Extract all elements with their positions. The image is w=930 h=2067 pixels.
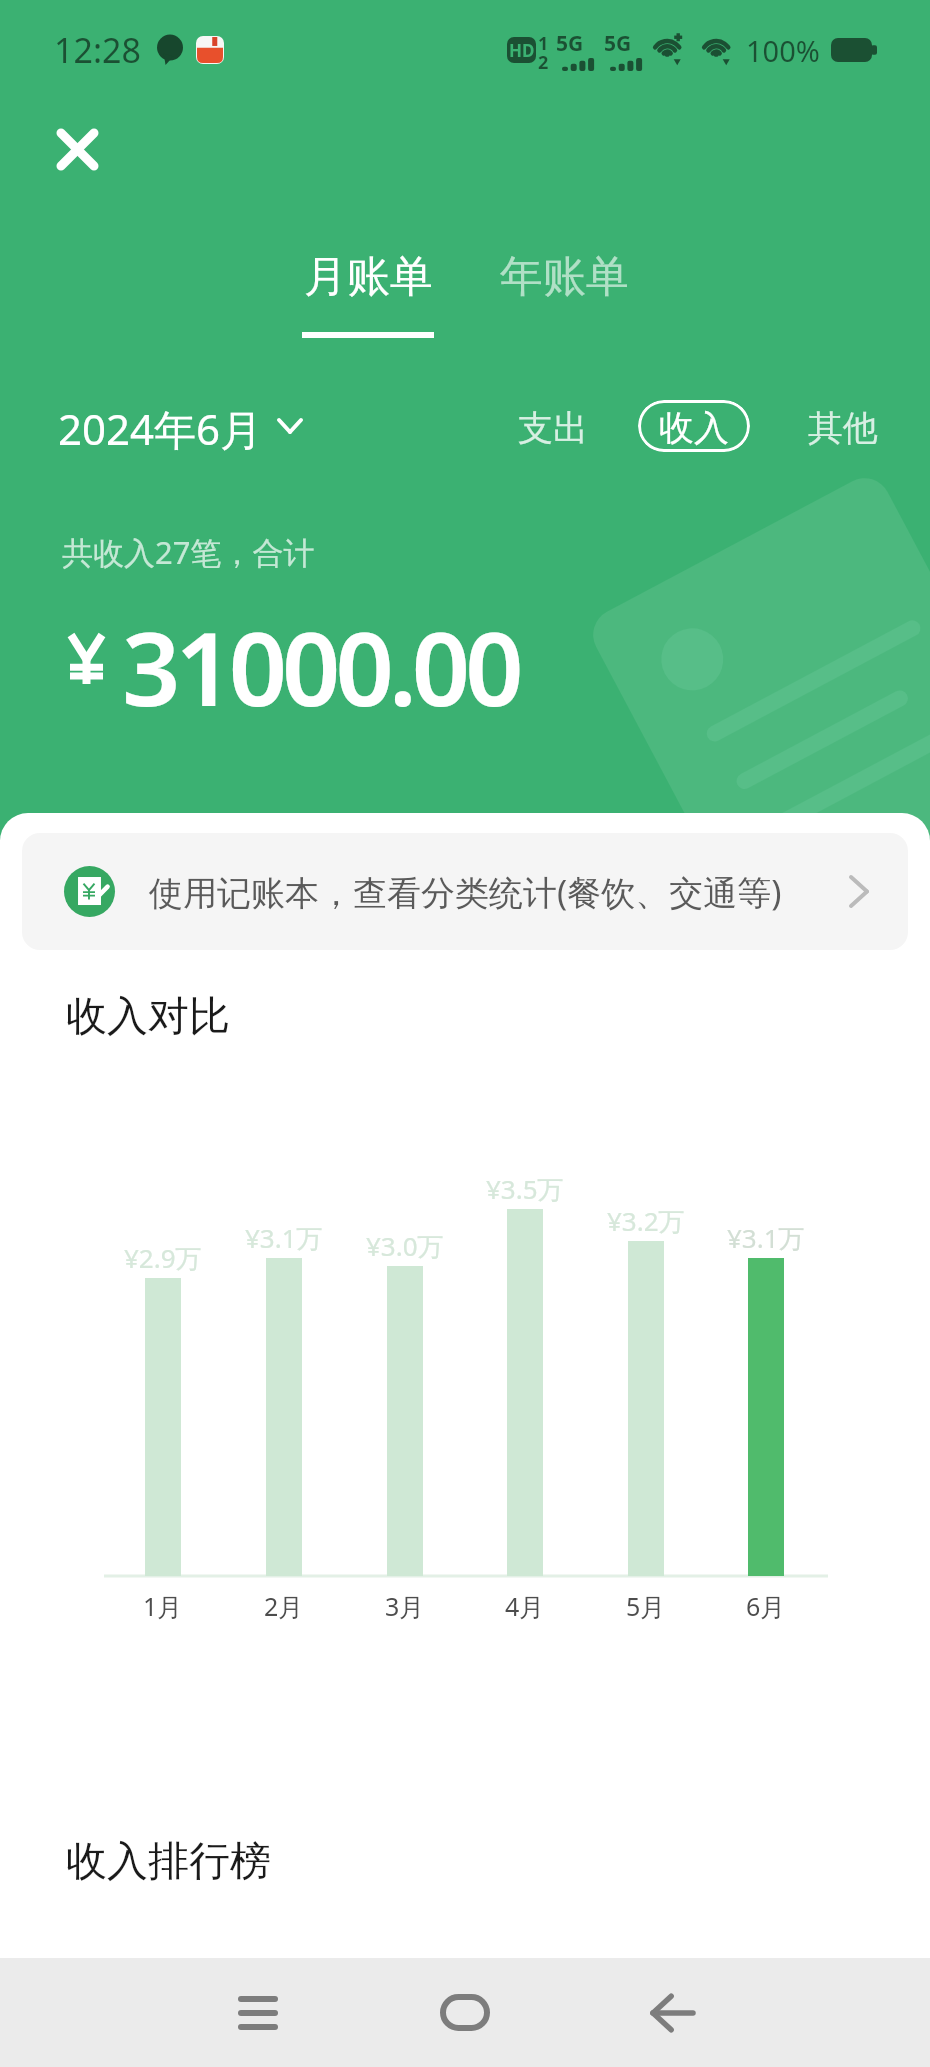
staticText: 31000.00	[122, 597, 519, 736]
button[interactable]: Recent apps	[203, 1958, 313, 2067]
staticText: ¥3.2万	[607, 1203, 685, 1239]
staticText: 1月	[143, 1589, 183, 1623]
staticText: 5月	[626, 1589, 666, 1623]
staticText: 2月	[264, 1589, 304, 1623]
staticText: 1	[538, 31, 549, 56]
staticText: 收入对比	[66, 991, 230, 1043]
button[interactable]: Close	[36, 108, 118, 190]
staticText: 2	[538, 50, 549, 75]
staticText: ¥3.1万	[727, 1220, 805, 1256]
staticText: 年账单	[500, 250, 629, 304]
staticText: 支出	[518, 406, 588, 446]
button[interactable]: 年账单	[500, 250, 629, 304]
staticText: 4月	[505, 1589, 545, 1623]
button[interactable]: Back	[618, 1958, 728, 2067]
staticText: 收入排行榜	[66, 1836, 271, 1888]
button[interactable]: 月账单	[302, 250, 434, 338]
button[interactable]: 支出	[510, 400, 596, 452]
staticText: 2024年6月	[58, 400, 263, 452]
staticText: HD	[509, 39, 535, 62]
staticText: ¥3.5万	[486, 1171, 564, 1207]
staticText: ¥3.0万	[366, 1228, 444, 1264]
staticText: 其他	[808, 406, 878, 446]
staticText: 3月	[385, 1589, 425, 1623]
staticText: 6月	[746, 1589, 786, 1623]
staticText: 5G	[556, 29, 584, 58]
button[interactable]: Home	[410, 1958, 520, 2067]
staticText: 收入	[659, 406, 729, 446]
staticText: 月账单	[304, 250, 433, 304]
button[interactable]: 其他	[800, 400, 886, 452]
staticText: 共收入27笔，合计	[62, 531, 315, 573]
button[interactable]: 收入	[638, 400, 750, 452]
staticText: ¥2.9万	[124, 1240, 202, 1276]
staticText: ¥3.1万	[245, 1220, 323, 1256]
staticText: 使用记账本，查看分类统计(餐饮、交通等)	[149, 869, 782, 915]
staticText: 5G	[604, 29, 632, 58]
staticText: 100%	[746, 31, 820, 70]
button[interactable]: 使用记账本，查看分类统计(餐饮、交通等)	[22, 833, 908, 950]
staticText: 12:28	[54, 27, 141, 73]
button[interactable]: 2024年6月	[58, 400, 302, 452]
